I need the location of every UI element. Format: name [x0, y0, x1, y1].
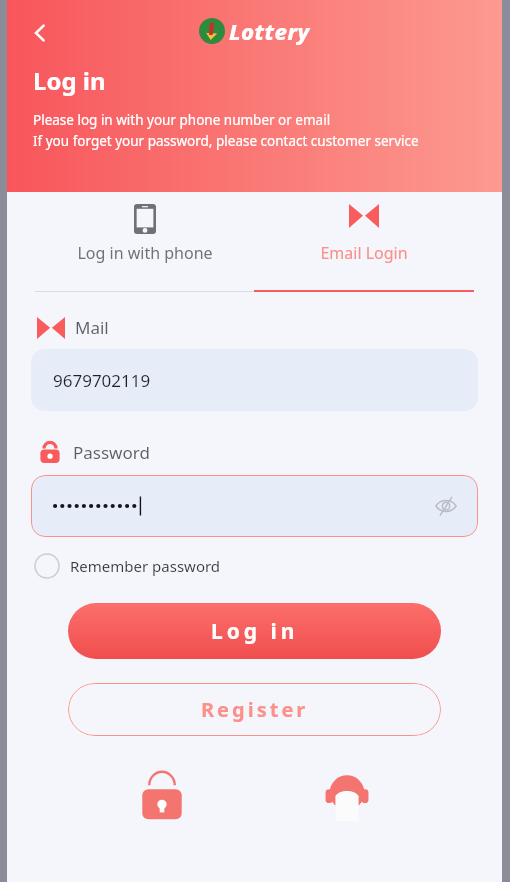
staticText: Lottery [229, 16, 310, 46]
button[interactable]: Show password [31, 475, 478, 537]
button[interactable]: Register [68, 683, 441, 736]
staticText: Password [73, 441, 150, 464]
button[interactable]: Customer service [317, 766, 377, 826]
staticText: Register [201, 696, 309, 723]
button[interactable]: Email Login [254, 192, 474, 292]
staticText: 9679702119 [53, 369, 151, 392]
staticText: Remember password [70, 556, 221, 576]
staticText: Mail [75, 316, 109, 339]
staticText: Log in with phone [77, 242, 213, 264]
staticText: If you forget your password, please cont… [33, 132, 419, 150]
button[interactable]: Forgot password [132, 766, 192, 826]
button[interactable]: Show password [432, 492, 460, 520]
button[interactable]: Remember password [34, 553, 502, 579]
staticText: Please log in with your phone number or … [33, 111, 331, 129]
button[interactable]: Back [21, 14, 59, 52]
button[interactable]: 9679702119 [31, 349, 478, 411]
staticText: Log in [211, 617, 299, 646]
staticText: Email Login [320, 242, 408, 264]
button[interactable]: Log in with phone [35, 192, 254, 292]
button[interactable]: Log in [68, 603, 441, 659]
staticText: Log in [33, 64, 106, 97]
